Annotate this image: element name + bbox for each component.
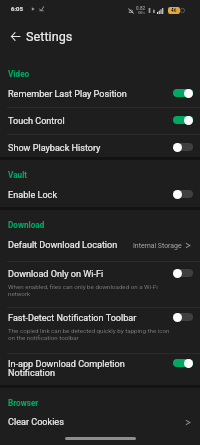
staticText: When enabled, files can only be download… [8, 283, 176, 298]
button[interactable]: Enable Lock [0, 182, 200, 207]
staticText: Download Only on Wi-Fi [8, 269, 104, 280]
staticText: Fast-Detect Notification Toolbar [8, 313, 137, 324]
button[interactable] [173, 268, 193, 278]
button[interactable] [173, 312, 193, 322]
button[interactable] [173, 115, 193, 125]
button[interactable]: In-app Download Completion Notification [0, 354, 200, 385]
staticText: In-app Download Completion Notification [8, 359, 169, 379]
staticText: The copied link can be detected quickly … [8, 327, 176, 342]
button[interactable]: Remember Last Play Position [0, 81, 200, 107]
button[interactable]: Touch Control [0, 108, 200, 134]
button[interactable]: Back [7, 28, 23, 44]
button[interactable] [173, 358, 193, 368]
staticText: KB/s [138, 11, 145, 15]
button[interactable] [173, 88, 193, 98]
button[interactable]: Fast-Detect Notification Toolbar [0, 308, 200, 353]
staticText: Download [8, 220, 45, 230]
staticText: Enable Lock [8, 190, 57, 201]
staticText: Video [8, 69, 30, 79]
button[interactable] [173, 189, 193, 199]
button[interactable] [173, 142, 193, 152]
staticText: 0.82 [136, 6, 146, 11]
button[interactable]: Clear Cookies [0, 409, 200, 431]
staticText: Default Download Location [8, 240, 118, 251]
staticText: 46 [171, 8, 177, 14]
button[interactable]: Show Playback History [0, 135, 200, 157]
staticText: Touch Control [8, 116, 65, 127]
staticText: Browser [8, 398, 39, 408]
staticText: 6:05 [11, 5, 23, 12]
staticText: Vault [8, 170, 28, 180]
button[interactable]: Download Only on Wi-Fi [0, 262, 200, 307]
button[interactable]: Default Download Location [0, 232, 200, 261]
staticText: Settings [26, 29, 73, 44]
staticText: Remember Last Play Position [8, 89, 127, 100]
staticText: Internal Storage [133, 242, 182, 250]
staticText: Show Playback History [8, 143, 101, 154]
staticText: Clear Cookies [8, 417, 64, 428]
